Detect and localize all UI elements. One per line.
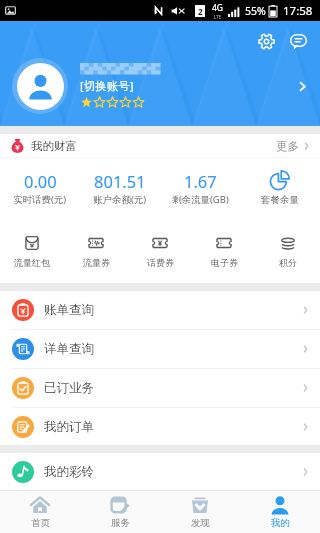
staticText: 17:58: [283, 3, 313, 19]
staticText: 801.51: [94, 170, 146, 192]
staticText: 我的彩铃: [44, 464, 94, 480]
staticText: 首页: [31, 517, 50, 529]
button[interactable]: 已订业务: [0, 369, 320, 407]
staticText: 我的: [271, 517, 290, 529]
button[interactable]: [切换账号]: [0, 58, 320, 114]
staticText: 账单查询: [44, 302, 94, 318]
button[interactable]: 积分: [256, 233, 320, 268]
staticText: 积分: [279, 257, 297, 268]
button[interactable]: 话费券: [128, 233, 192, 268]
button[interactable]: 套餐余量: [240, 166, 320, 206]
staticText: 2: [198, 6, 203, 17]
staticText: 电子券: [211, 257, 238, 268]
staticText: 流量红包: [14, 257, 50, 268]
button[interactable]: 服务: [80, 491, 160, 533]
button[interactable]: 我的彩铃: [0, 453, 320, 490]
staticText: 已订业务: [44, 380, 94, 396]
staticText: 更多: [276, 139, 299, 153]
button[interactable]: 更多: [276, 139, 310, 153]
button[interactable]: 我的: [240, 491, 320, 533]
staticText: LTE: [214, 14, 222, 20]
button[interactable]: 流量券: [64, 233, 128, 268]
staticText: 流量券: [83, 257, 110, 268]
button[interactable]: 设置 Settings: [253, 28, 279, 54]
staticText: [切换账号]: [80, 78, 134, 94]
button[interactable]: 801.51: [80, 165, 160, 206]
staticText: 账户余额(元): [93, 193, 147, 206]
button[interactable]: 我的订单: [0, 408, 320, 445]
staticText: 剩余流量(GB): [172, 193, 229, 206]
staticText: 我的财富: [31, 139, 77, 153]
button[interactable]: 1.67: [160, 165, 240, 206]
staticText: 套餐余量: [261, 194, 299, 206]
staticText: 0.00: [24, 170, 57, 192]
button[interactable]: 发现: [160, 491, 240, 533]
staticText: 发现: [191, 517, 210, 529]
button[interactable]: 详单查询: [0, 330, 320, 368]
staticText: 服务: [111, 517, 130, 529]
button[interactable]: 流量红包: [0, 233, 64, 268]
staticText: 4G: [212, 2, 224, 14]
button[interactable]: 首页: [0, 491, 80, 533]
staticText: 实时话费(元): [13, 193, 67, 206]
staticText: 话费券: [147, 257, 174, 268]
staticText: 我的订单: [44, 419, 94, 435]
button[interactable]: 消息 Messages: [285, 28, 311, 54]
button[interactable]: 电子券: [192, 233, 256, 268]
staticText: 详单查询: [44, 341, 94, 357]
button[interactable]: 0.00: [0, 165, 80, 206]
button[interactable]: 账单查询: [0, 291, 320, 329]
staticText: 1.67: [184, 170, 217, 192]
staticText: 55%: [245, 4, 266, 18]
